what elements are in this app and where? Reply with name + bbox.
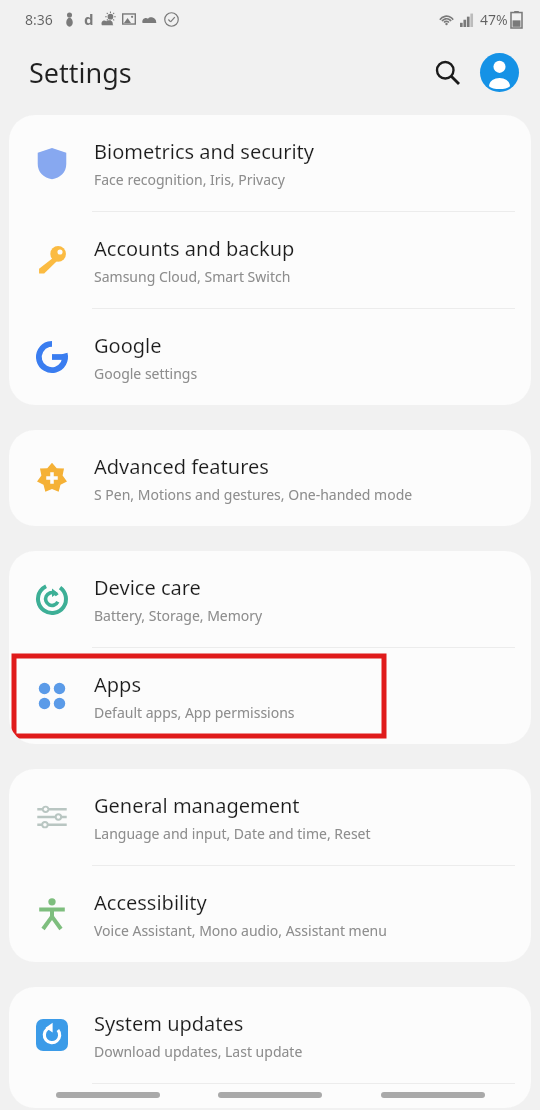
staticText: Default apps, App permissions bbox=[94, 703, 295, 722]
staticText: Language and input, Date and time, Reset bbox=[94, 824, 371, 843]
staticText: Face recognition, Iris, Privacy bbox=[94, 170, 285, 189]
staticText: S Pen, Motions and gestures, One-handed … bbox=[94, 485, 413, 504]
button[interactable]: Home bbox=[215, 1082, 325, 1108]
button[interactable]: General management bbox=[9, 769, 531, 865]
staticText: Settings bbox=[29, 54, 132, 91]
staticText: Samsung Cloud, Smart Switch bbox=[94, 267, 291, 286]
staticText: Battery, Storage, Memory bbox=[94, 606, 263, 625]
button[interactable]: Advanced features bbox=[9, 430, 531, 526]
staticText: Biometrics and security bbox=[94, 138, 314, 165]
staticText: Google bbox=[94, 332, 162, 359]
staticText: Voice Assistant, Mono audio, Assistant m… bbox=[94, 921, 387, 940]
staticText: Accounts and backup bbox=[94, 235, 295, 262]
button[interactable]: Accounts and backup bbox=[9, 212, 531, 308]
staticText: 8:36 bbox=[25, 10, 53, 29]
button[interactable]: Back bbox=[378, 1082, 488, 1108]
staticText: Device care bbox=[94, 574, 201, 601]
button[interactable]: Search bbox=[424, 49, 470, 95]
button[interactable]: System updates bbox=[9, 987, 531, 1083]
staticText: System updates bbox=[94, 1010, 244, 1037]
staticText: General management bbox=[94, 792, 300, 819]
button[interactable]: Device care bbox=[9, 551, 531, 647]
staticText: Download updates, Last update bbox=[94, 1042, 303, 1061]
button[interactable]: Google bbox=[9, 309, 531, 405]
button[interactable]: Apps bbox=[9, 648, 531, 744]
staticText: d bbox=[84, 9, 94, 29]
staticText: Accessibility bbox=[94, 889, 207, 916]
staticText: Advanced features bbox=[94, 453, 269, 480]
staticText: 47% bbox=[480, 10, 508, 29]
button[interactable]: Biometrics and security bbox=[9, 115, 531, 211]
staticText: Google settings bbox=[94, 364, 198, 383]
button[interactable]: Account bbox=[476, 49, 522, 95]
button[interactable]: Accessibility bbox=[9, 866, 531, 962]
staticText: Apps bbox=[94, 671, 141, 698]
button[interactable]: Recents bbox=[53, 1082, 163, 1108]
